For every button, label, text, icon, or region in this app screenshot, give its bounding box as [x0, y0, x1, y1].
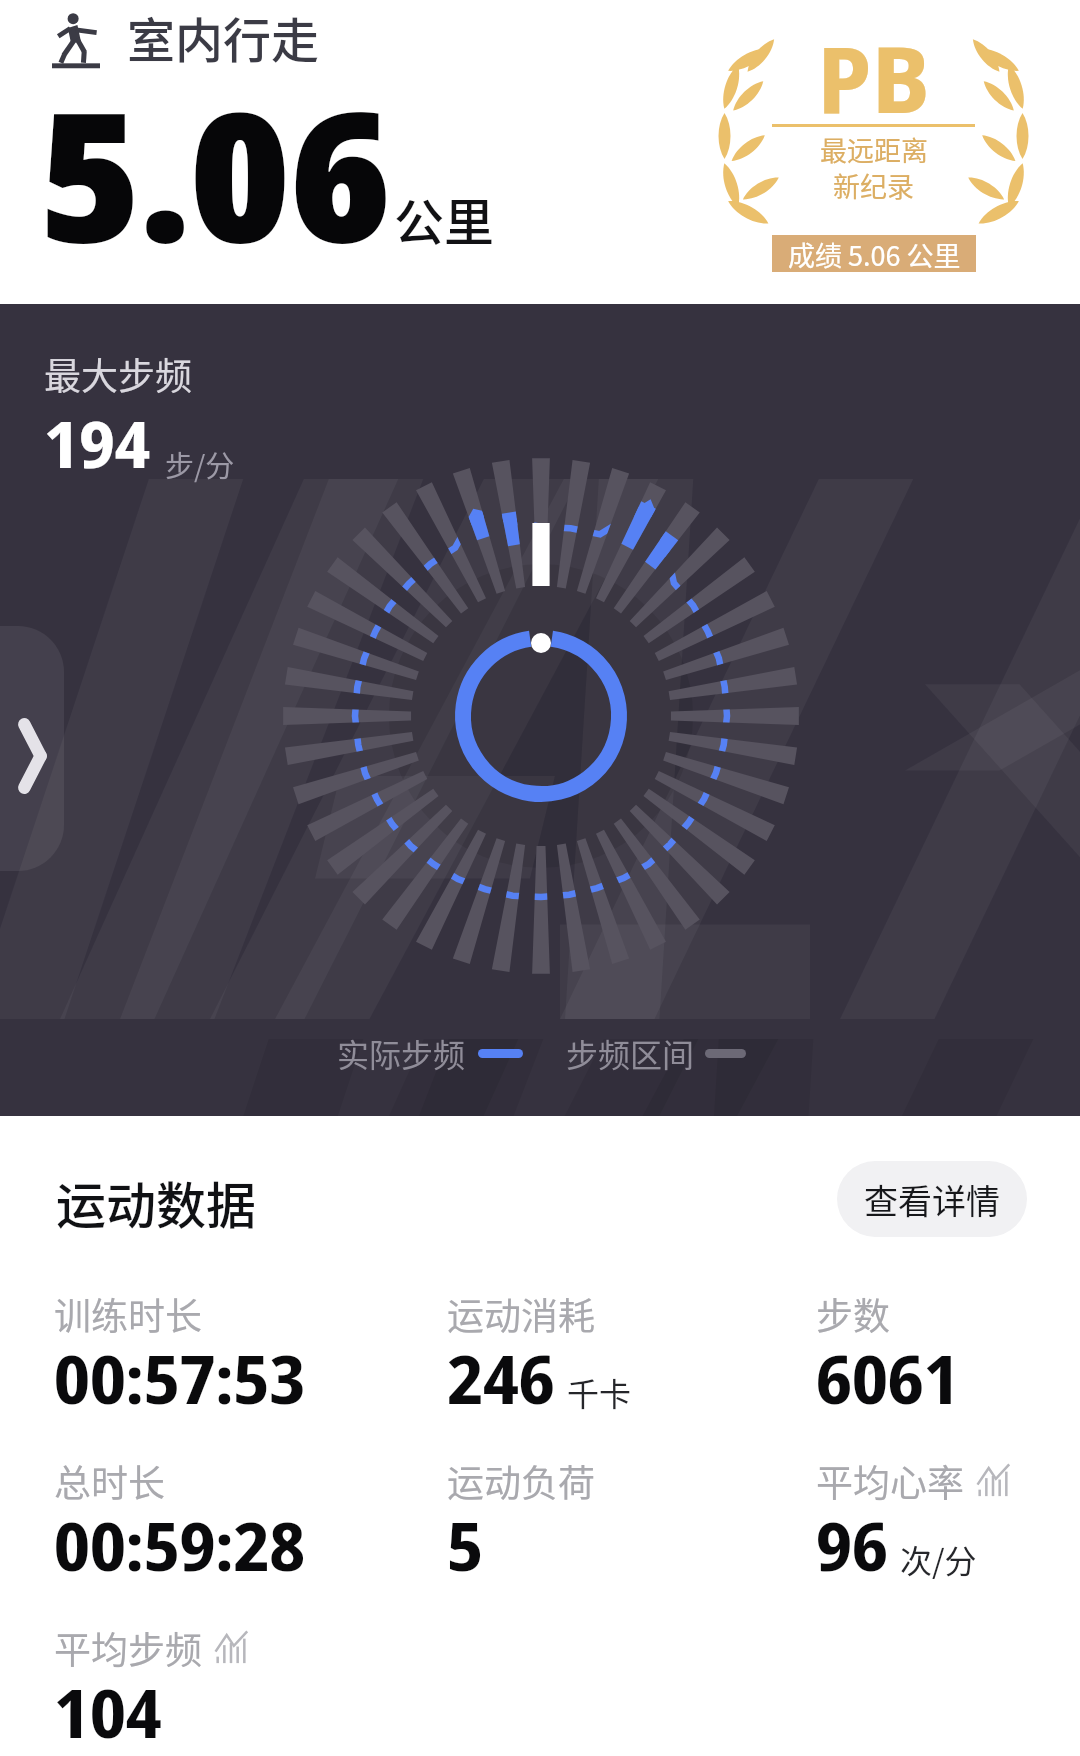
staticText: 千卡	[567, 1369, 632, 1415]
staticText: 步数	[816, 1287, 890, 1341]
staticText: 运动消耗	[447, 1287, 595, 1341]
staticText: 实际步频	[337, 1030, 466, 1076]
staticText: 00:57:53	[54, 1333, 306, 1423]
staticText: 新纪录	[833, 166, 914, 205]
staticText: 室内行走	[127, 2, 320, 72]
staticText: 平均心率	[816, 1454, 964, 1508]
staticText: 5.06	[40, 50, 391, 295]
button[interactable]: Personal best: farthest distance record	[718, 20, 1029, 300]
staticText: 最大步频	[44, 347, 192, 401]
staticText: 步/分	[165, 443, 235, 485]
staticText: 6061	[816, 1333, 960, 1423]
staticText: 训练时长	[54, 1287, 202, 1341]
staticText: 194	[44, 399, 151, 488]
staticText: 公里	[394, 183, 494, 255]
staticText: 5	[447, 1500, 483, 1590]
staticText: 运动负荷	[447, 1454, 595, 1508]
staticText: 平均步频	[54, 1621, 202, 1675]
staticText: 96	[816, 1500, 888, 1590]
staticText: 查看详情	[864, 1175, 1000, 1224]
staticText: 步频区间	[566, 1030, 695, 1076]
button[interactable]: Next activity	[0, 626, 64, 871]
staticText: 104	[54, 1667, 162, 1756]
staticText: 成绩 5.06 公里	[788, 235, 961, 272]
staticText: 00:59:28	[54, 1500, 306, 1590]
staticText: 运动数据	[56, 1166, 256, 1238]
staticText: 246	[447, 1333, 555, 1423]
staticText: 次/分	[900, 1536, 977, 1582]
staticText: 总时长	[54, 1454, 165, 1508]
button[interactable]: 查看详情	[837, 1161, 1027, 1237]
staticText: PB	[817, 15, 930, 140]
staticText: 最远距离	[820, 130, 928, 169]
